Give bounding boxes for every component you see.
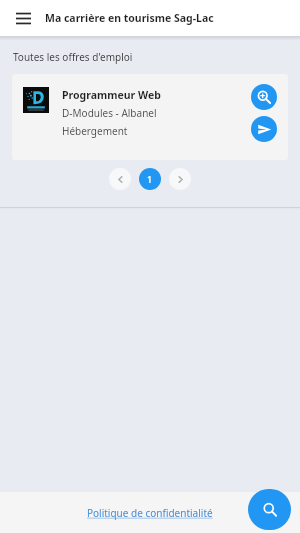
button[interactable]: Search jobs <box>248 489 291 530</box>
staticText: 1 <box>147 173 153 185</box>
button[interactable]: Previous page <box>109 168 131 190</box>
staticText: Ma carrière en tourisme Sag-Lac <box>45 11 214 25</box>
button[interactable]: Open navigation menu <box>10 5 36 31</box>
staticText: Politique de confidentialité <box>87 506 213 520</box>
staticText: Toutes les offres d'emploi <box>13 50 133 64</box>
button[interactable]: Apply / send application <box>251 116 277 142</box>
button[interactable]: Next page <box>169 168 191 190</box>
staticText: Programmeur Web <box>62 88 161 102</box>
button[interactable]: Politique de confidentialité <box>85 504 215 522</box>
button[interactable]: Programmeur Web <box>12 74 288 160</box>
button[interactable]: View job details <box>251 84 277 110</box>
staticText: D-Modules - Albanel <box>62 106 157 120</box>
staticText: Hébergement <box>62 124 128 138</box>
button[interactable]: Page 1 <box>139 168 161 190</box>
